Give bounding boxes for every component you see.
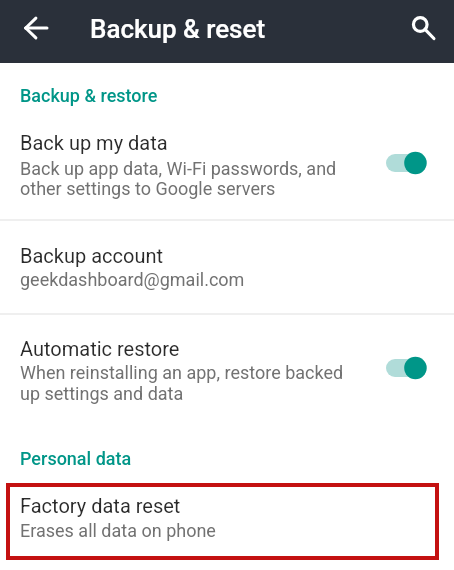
staticText: Backup & restore bbox=[20, 85, 158, 106]
staticText: Back up my data bbox=[20, 131, 168, 154]
button[interactable]: Factory data reset bbox=[6, 483, 439, 560]
staticText: When reinstalling an app, restore backed… bbox=[20, 362, 344, 404]
button[interactable]: Back bbox=[8, 8, 48, 48]
button[interactable]: Automatic restore bbox=[0, 315, 454, 416]
staticText: Erases all data on phone bbox=[20, 520, 216, 541]
staticText: Backup account bbox=[20, 244, 163, 267]
staticText: Backup & reset bbox=[90, 14, 266, 44]
staticText: Personal data bbox=[20, 448, 132, 469]
button[interactable]: Back up my data bbox=[0, 118, 454, 219]
button[interactable]: Search bbox=[400, 6, 440, 46]
staticText: Factory data reset bbox=[20, 494, 181, 517]
button[interactable]: Toggle bbox=[385, 153, 429, 173]
staticText: Back up app data, Wi-Fi passwords, and o… bbox=[20, 158, 337, 199]
button[interactable]: Backup account bbox=[0, 221, 454, 313]
button[interactable]: Toggle bbox=[385, 358, 429, 378]
staticText: geekdashboard@gmail.com bbox=[20, 269, 245, 290]
staticText: Automatic restore bbox=[20, 337, 180, 360]
